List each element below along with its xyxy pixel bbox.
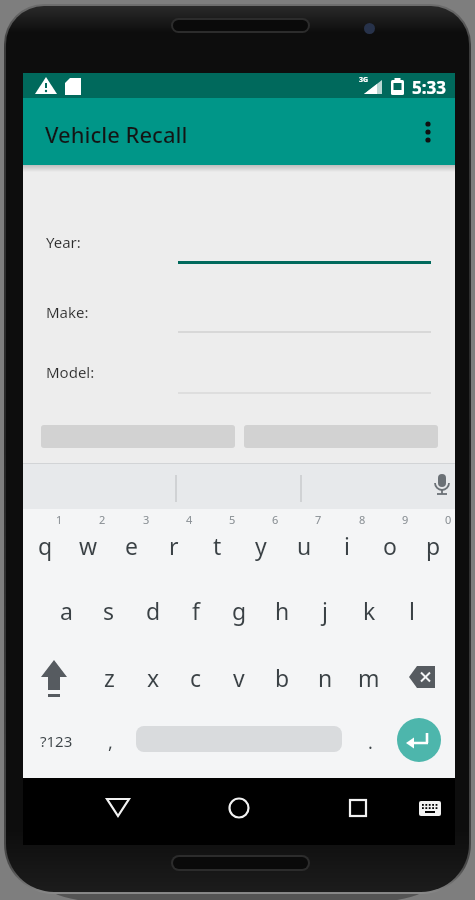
button[interactable]: n — [305, 655, 345, 699]
staticText: 0 — [445, 512, 452, 527]
button[interactable]: i — [327, 523, 367, 567]
button[interactable]: q — [25, 523, 65, 567]
button[interactable]: h — [262, 588, 302, 632]
staticText: 5:33 — [412, 76, 446, 99]
staticText: g — [232, 595, 247, 626]
button[interactable]: j — [305, 588, 345, 632]
button[interactable]: g — [219, 588, 259, 632]
staticText: c — [190, 662, 202, 693]
staticText: z — [104, 662, 115, 693]
staticText: m — [358, 662, 380, 693]
button[interactable]: m — [349, 655, 389, 699]
staticText: p — [426, 530, 441, 561]
button[interactable]: t — [197, 523, 237, 567]
staticText: r — [169, 530, 179, 561]
staticText: u — [297, 530, 312, 561]
button[interactable]: l — [392, 588, 432, 632]
staticText: Make: — [46, 302, 89, 322]
staticText: d — [146, 595, 161, 626]
staticText: k — [363, 595, 376, 626]
staticText: b — [275, 662, 290, 693]
staticText: q — [38, 530, 53, 561]
staticText: 6 — [272, 512, 279, 527]
staticText: 3 — [143, 512, 150, 527]
staticText: 1 — [56, 512, 63, 527]
staticText: 5 — [229, 512, 236, 527]
staticText: a — [60, 595, 73, 626]
button[interactable]: k — [349, 588, 389, 632]
staticText: 8 — [359, 512, 366, 527]
button[interactable] — [23, 463, 176, 509]
button[interactable]: e — [111, 523, 151, 567]
button[interactable]: x — [133, 655, 173, 699]
staticText: Year: — [46, 232, 81, 252]
button[interactable]: u — [284, 523, 324, 567]
button[interactable] — [94, 788, 142, 836]
staticText: h — [275, 595, 290, 626]
button[interactable] — [413, 792, 449, 832]
button[interactable]: d — [133, 588, 173, 632]
button[interactable]: r — [154, 523, 194, 567]
staticText: Vehicle Recall — [45, 119, 188, 149]
staticText: Model: — [46, 362, 95, 382]
button[interactable] — [391, 653, 455, 701]
button[interactable]: a — [46, 588, 86, 632]
button[interactable]: c — [176, 655, 216, 699]
staticText: l — [409, 595, 415, 626]
button[interactable] — [215, 788, 263, 836]
button[interactable]: . — [350, 720, 390, 764]
staticText: x — [147, 662, 160, 693]
staticText: f — [192, 595, 200, 626]
staticText: 4 — [186, 512, 193, 527]
button[interactable] — [176, 463, 301, 509]
button[interactable]: y — [241, 523, 281, 567]
staticText: 7 — [315, 512, 322, 527]
button[interactable]: , — [90, 720, 130, 764]
button[interactable]: f — [176, 588, 216, 632]
staticText: 9 — [402, 512, 409, 527]
button[interactable]: b — [262, 655, 302, 699]
button[interactable] — [407, 108, 455, 156]
staticText: . — [368, 730, 373, 755]
staticText: e — [125, 530, 138, 561]
staticText: t — [213, 530, 222, 561]
button[interactable]: s — [89, 588, 129, 632]
button[interactable] — [423, 463, 455, 509]
button[interactable]: w — [68, 523, 108, 567]
button[interactable] — [397, 718, 441, 762]
staticText: n — [318, 662, 333, 693]
staticText: o — [383, 530, 397, 561]
staticText: , — [108, 730, 113, 755]
button[interactable]: ?123 — [36, 719, 76, 763]
staticText: s — [103, 595, 115, 626]
staticText: j — [322, 595, 328, 626]
button[interactable]: p — [413, 523, 453, 567]
staticText: w — [79, 530, 98, 561]
button[interactable] — [334, 788, 382, 836]
staticText: v — [233, 662, 245, 693]
staticText: y — [255, 530, 267, 561]
staticText: 2 — [99, 512, 106, 527]
button[interactable]: z — [89, 655, 129, 699]
staticText: i — [344, 530, 350, 561]
button[interactable] — [23, 653, 87, 701]
staticText: 3G — [359, 75, 369, 85]
button[interactable]: v — [219, 655, 259, 699]
button[interactable]: o — [370, 523, 410, 567]
staticText: ?123 — [40, 731, 73, 751]
